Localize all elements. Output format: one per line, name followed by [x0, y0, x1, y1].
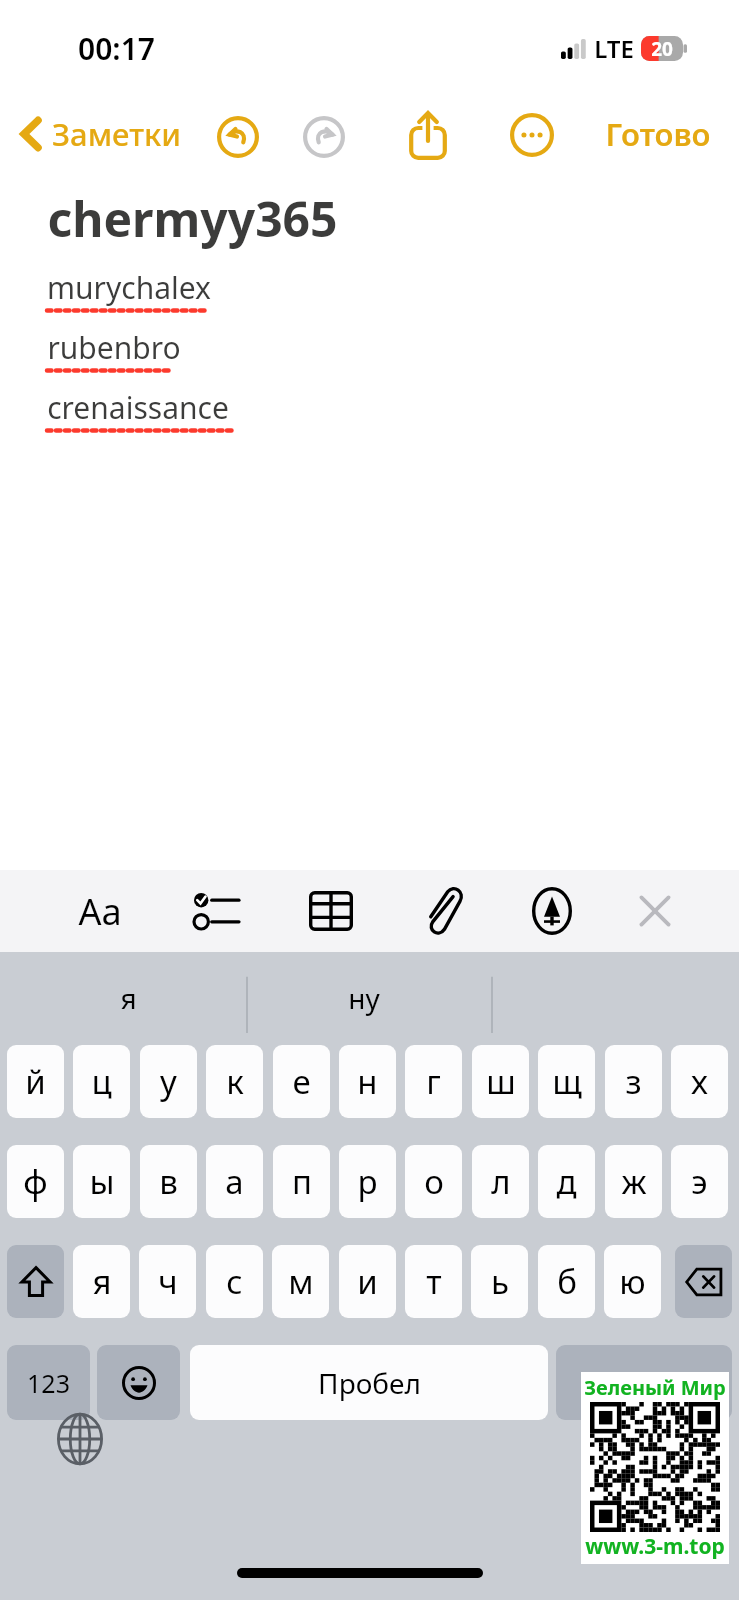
staticText: ф: [23, 1159, 48, 1204]
button[interactable]: с: [206, 1245, 263, 1318]
staticText: Заметки: [52, 113, 181, 155]
staticText: в: [159, 1159, 178, 1204]
staticText: п: [292, 1159, 312, 1204]
button[interactable]: з: [605, 1045, 662, 1118]
button[interactable]: Заметки: [14, 107, 187, 161]
staticText: й: [25, 1059, 46, 1104]
staticText: crenaissance: [47, 387, 229, 428]
button[interactable]: в: [140, 1145, 197, 1218]
button[interactable]: ы: [73, 1145, 130, 1218]
staticText: х: [691, 1059, 708, 1104]
staticText: ш: [486, 1059, 516, 1104]
button[interactable]: Готово: [599, 107, 717, 161]
staticText: ц: [91, 1059, 112, 1104]
button[interactable]: е: [273, 1045, 330, 1118]
staticText: rubenbro: [47, 327, 181, 368]
button[interactable]: а: [206, 1145, 263, 1218]
button[interactable]: т: [405, 1245, 462, 1318]
staticText: к: [226, 1059, 244, 1104]
button[interactable]: о: [405, 1145, 462, 1218]
button[interactable]: More options: [504, 107, 560, 163]
staticText: ь: [491, 1259, 509, 1304]
button[interactable]: ж: [605, 1145, 662, 1218]
staticText: д: [556, 1159, 577, 1204]
staticText: ю: [619, 1259, 646, 1304]
button[interactable]: б: [538, 1245, 595, 1318]
button[interactable]: ш: [472, 1045, 529, 1118]
staticText: т: [426, 1259, 442, 1304]
staticText: 123: [27, 1366, 70, 1400]
button[interactable]: ч: [139, 1245, 196, 1318]
staticText: э: [691, 1159, 708, 1204]
button[interactable]: Emoji: [97, 1345, 180, 1420]
button[interactable]: Markup: [520, 879, 584, 943]
button[interactable]: п: [273, 1145, 330, 1218]
button[interactable]: р: [339, 1145, 396, 1218]
staticText: 00:17: [78, 28, 155, 69]
staticText: е: [292, 1059, 311, 1104]
staticText: Aa: [78, 887, 122, 936]
button[interactable]: к: [206, 1045, 263, 1118]
button[interactable]: г: [405, 1045, 462, 1118]
button[interactable]: Пробел: [190, 1345, 548, 1420]
staticText: я: [92, 1259, 112, 1304]
staticText: а: [225, 1159, 244, 1204]
button[interactable]: ю: [604, 1245, 661, 1318]
staticText: 20: [651, 36, 673, 61]
button[interactable]: х: [671, 1045, 728, 1118]
staticText: ы: [89, 1159, 115, 1204]
staticText: о: [424, 1159, 444, 1204]
staticText: б: [557, 1259, 577, 1304]
button[interactable]: ну: [348, 979, 380, 1017]
button[interactable]: Backspace: [675, 1245, 732, 1318]
staticText: г: [426, 1059, 441, 1104]
button[interactable]: ф: [7, 1145, 64, 1218]
button[interactable]: Attach: [411, 879, 475, 943]
staticText: и: [357, 1259, 378, 1304]
staticText: LTE: [594, 32, 634, 65]
button[interactable]: э: [671, 1145, 728, 1218]
button[interactable]: ь: [471, 1245, 528, 1318]
button[interactable]: я: [73, 1245, 130, 1318]
staticText: www.3-m.top: [585, 1532, 725, 1561]
staticText: murychalex: [47, 267, 211, 308]
staticText: з: [625, 1059, 642, 1104]
button[interactable]: д: [538, 1145, 595, 1218]
button[interactable]: Checklist: [184, 879, 248, 943]
button[interactable]: Ввод: [556, 1345, 732, 1420]
button[interactable]: я: [120, 979, 137, 1017]
staticText: ж: [621, 1159, 647, 1204]
button[interactable]: и: [339, 1245, 396, 1318]
button[interactable]: щ: [538, 1045, 595, 1118]
staticText: р: [357, 1159, 378, 1204]
button[interactable]: ц: [73, 1045, 130, 1118]
button[interactable]: Redo: [298, 111, 350, 163]
staticText: с: [226, 1259, 243, 1304]
button[interactable]: Close keyboard: [623, 879, 687, 943]
staticText: Пробел: [318, 1364, 421, 1402]
button[interactable]: н: [339, 1045, 396, 1118]
staticText: н: [357, 1059, 378, 1104]
button[interactable]: Share: [400, 107, 456, 163]
button[interactable]: Format text: [68, 879, 132, 943]
staticText: Зеленый Мир: [584, 1374, 726, 1401]
button[interactable]: л: [472, 1145, 529, 1218]
staticText: м: [288, 1259, 314, 1304]
staticText: л: [491, 1159, 511, 1204]
staticText: ч: [158, 1259, 178, 1304]
staticText: chermyy365: [47, 186, 338, 251]
button[interactable]: Table: [299, 879, 363, 943]
button[interactable]: Shift: [7, 1245, 64, 1318]
staticText: щ: [552, 1059, 582, 1104]
staticText: у: [160, 1059, 177, 1104]
button[interactable]: Numbers: [7, 1345, 90, 1420]
button[interactable]: Undo: [212, 111, 264, 163]
staticText: Ввод: [610, 1364, 678, 1402]
button[interactable]: Change keyboard: [48, 1407, 112, 1471]
staticText: Готово: [605, 113, 711, 155]
button[interactable]: м: [272, 1245, 329, 1318]
button[interactable]: у: [140, 1045, 197, 1118]
button[interactable]: й: [7, 1045, 64, 1118]
